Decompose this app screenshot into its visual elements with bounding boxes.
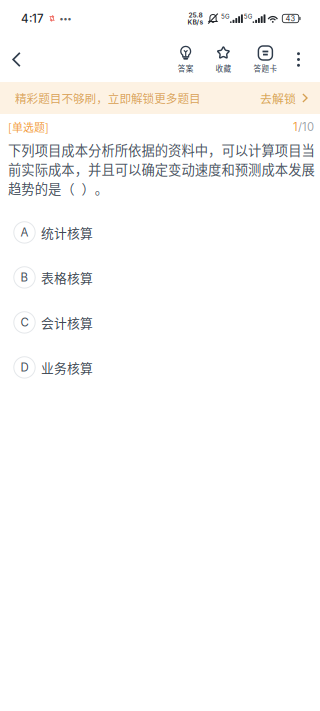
staticText: [单选题] bbox=[8, 119, 49, 135]
button[interactable]: 答题卡 bbox=[247, 37, 284, 82]
staticText: ••• bbox=[59, 13, 71, 23]
button[interactable]: A bbox=[0, 210, 320, 255]
button[interactable]: 答案 bbox=[171, 37, 200, 82]
staticText: 业务核算 bbox=[41, 358, 93, 377]
staticText: 5G bbox=[244, 13, 253, 20]
button[interactable]: 收藏 bbox=[200, 37, 247, 82]
staticText: 43 bbox=[285, 14, 295, 23]
button[interactable]: C bbox=[0, 300, 320, 345]
staticText: 下列项目成本分析所依据的资料中，可以计算项目当前实际成本，并且可以确定变动速度和… bbox=[8, 140, 314, 198]
staticText: D bbox=[20, 360, 28, 374]
button[interactable]: 更多 bbox=[284, 37, 313, 82]
staticText: 去解锁 bbox=[260, 89, 296, 107]
staticText: 4:17 bbox=[21, 12, 44, 25]
button[interactable]: 精彩题目不够刷，立即解锁更多题目 bbox=[0, 82, 320, 114]
staticText: 统计核算 bbox=[41, 223, 93, 242]
staticText: KB/s bbox=[188, 18, 204, 26]
staticText: 收藏 bbox=[215, 63, 231, 74]
staticText: 答案 bbox=[178, 63, 194, 74]
staticText: 表格核算 bbox=[41, 268, 93, 287]
staticText: B bbox=[20, 270, 28, 284]
staticText: 5G bbox=[221, 13, 230, 20]
button[interactable]: 返回 bbox=[0, 37, 33, 82]
staticText: C bbox=[20, 315, 28, 329]
button[interactable]: D bbox=[0, 345, 320, 390]
staticText: 精彩题目不够刷，立即解锁更多题目 bbox=[15, 90, 201, 106]
staticText: /10 bbox=[298, 120, 314, 134]
staticText: 1 bbox=[293, 120, 298, 134]
staticText: 会计核算 bbox=[41, 313, 93, 332]
staticText: 答题卡 bbox=[253, 63, 277, 74]
staticText: 25.8 bbox=[189, 11, 203, 19]
staticText: A bbox=[20, 225, 28, 239]
button[interactable]: B bbox=[0, 255, 320, 300]
